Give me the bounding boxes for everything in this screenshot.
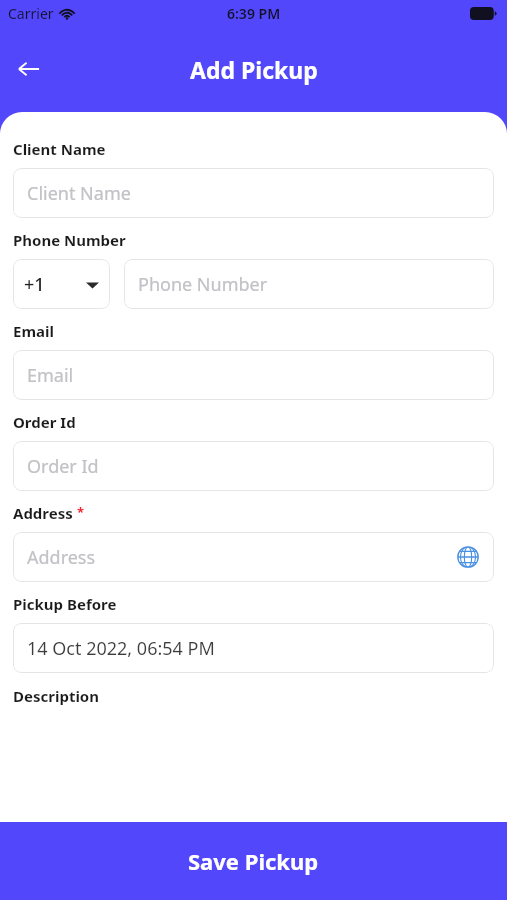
button[interactable]: Save Pickup bbox=[0, 822, 507, 900]
staticText: Client Name bbox=[27, 181, 131, 206]
staticText: Order Id bbox=[13, 412, 76, 432]
button[interactable]: Pick location on map bbox=[454, 543, 482, 571]
staticText: Address bbox=[27, 545, 96, 570]
staticText: Save Pickup bbox=[188, 846, 319, 876]
staticText: Phone Number bbox=[13, 230, 126, 250]
staticText: Email bbox=[27, 363, 74, 388]
staticText: Address bbox=[13, 503, 73, 523]
staticText: +1 bbox=[24, 272, 45, 297]
staticText: Client Name bbox=[13, 139, 106, 159]
staticText: Add Pickup bbox=[190, 54, 318, 85]
button[interactable]: Email bbox=[13, 350, 494, 400]
staticText: Email bbox=[13, 321, 54, 341]
staticText: Pickup Before bbox=[13, 594, 117, 614]
button[interactable]: +1 bbox=[13, 259, 110, 309]
button[interactable]: 14 Oct 2022, 06:54 PM bbox=[13, 623, 494, 673]
staticText: Carrier bbox=[8, 4, 54, 23]
staticText: Order Id bbox=[27, 454, 99, 479]
staticText: 14 Oct 2022, 06:54 PM bbox=[27, 636, 215, 661]
button[interactable]: Back bbox=[8, 48, 50, 90]
staticText: * bbox=[77, 503, 85, 521]
button[interactable]: Phone Number bbox=[124, 259, 494, 309]
staticText: Phone Number bbox=[138, 272, 268, 297]
button[interactable]: Order Id bbox=[13, 441, 494, 491]
staticText: Description bbox=[13, 686, 99, 706]
button[interactable]: Client Name bbox=[13, 168, 494, 218]
button[interactable]: Address bbox=[13, 532, 494, 582]
staticText: 6:39 PM bbox=[227, 4, 281, 23]
